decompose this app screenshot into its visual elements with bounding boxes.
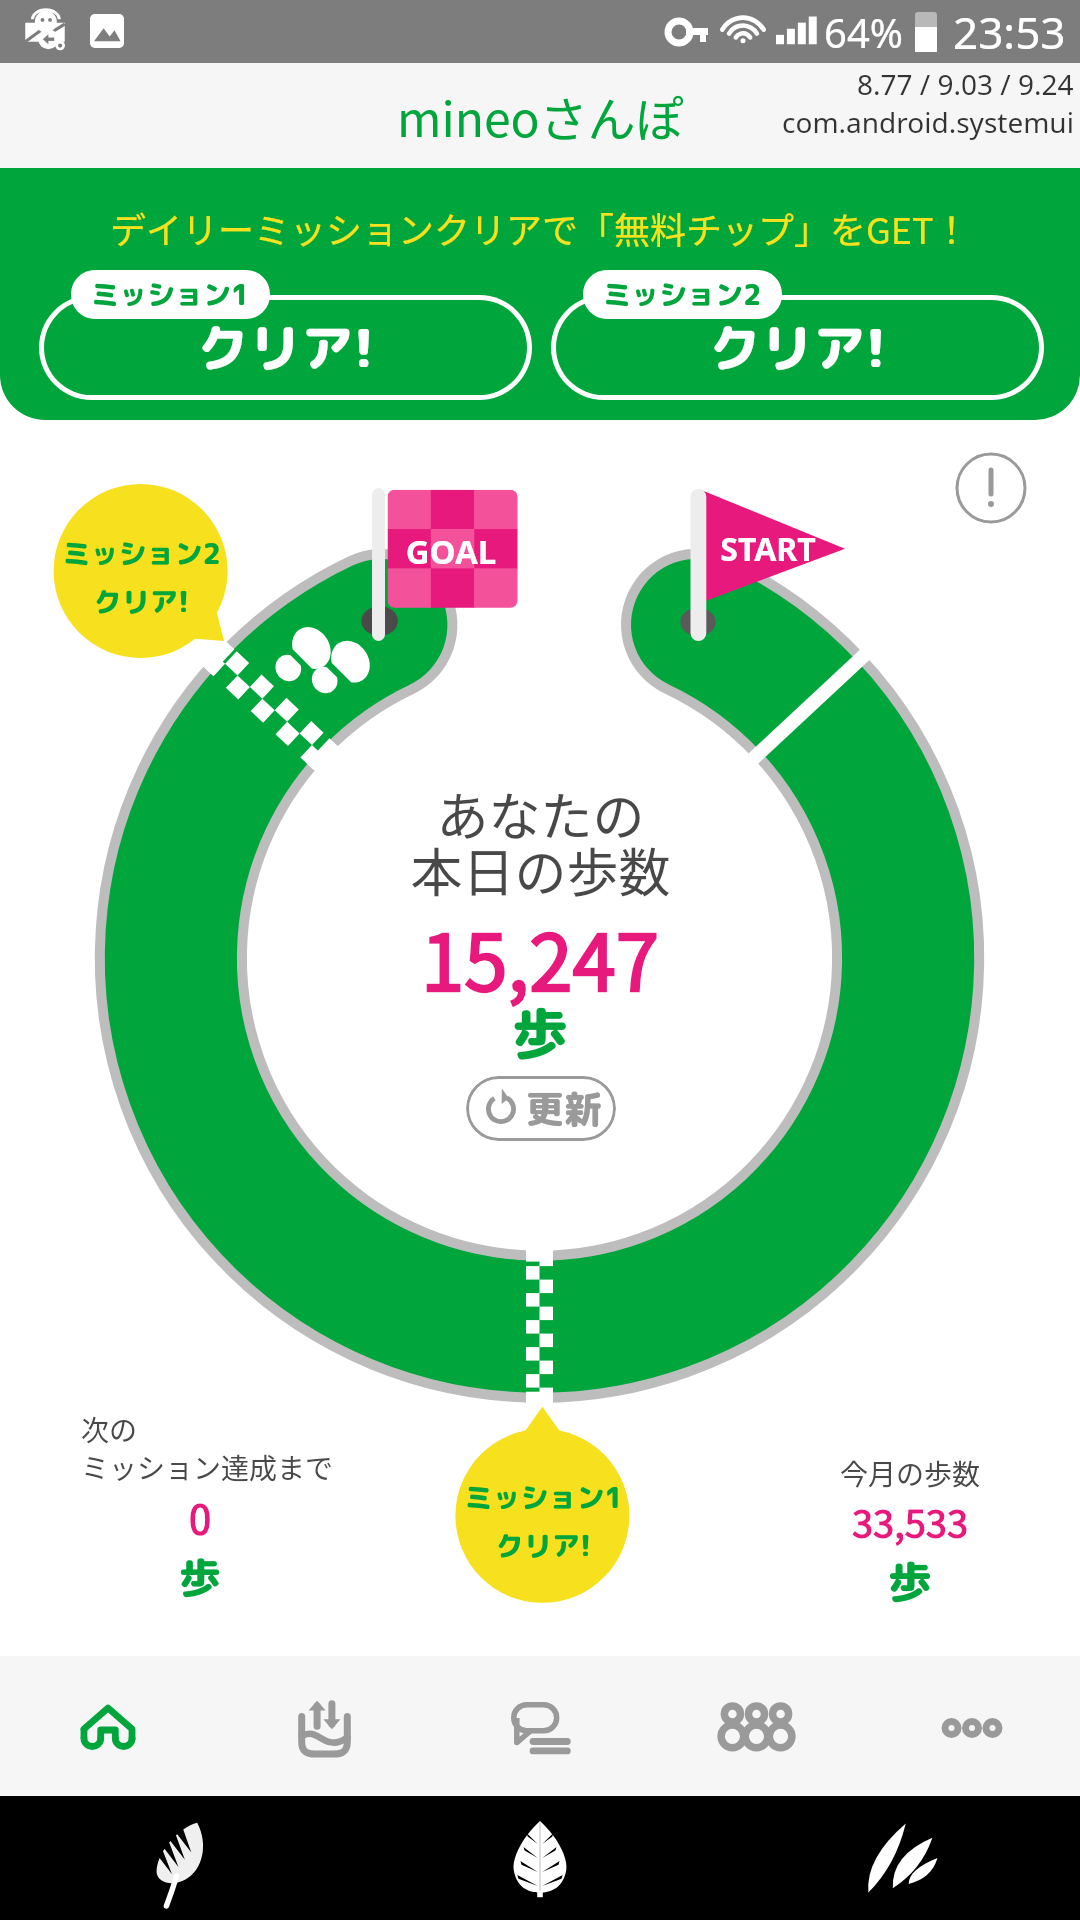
staticText: ミッション1 クリア! [464, 1478, 623, 1565]
button[interactable]: Community [648, 1659, 864, 1796]
staticText: ミッション2 クリア! [62, 534, 221, 621]
button[interactable]: Home [360, 1796, 720, 1920]
button[interactable]: Recents [0, 1796, 360, 1920]
staticText: ミッション1 [91, 275, 250, 314]
button[interactable]: 更新 [466, 1076, 616, 1141]
button[interactable]: Chat [432, 1659, 648, 1796]
staticText: 次の ミッション達成まで [81, 1409, 334, 1488]
staticText: GOAL [391, 529, 511, 574]
staticText: START [708, 527, 828, 571]
button[interactable]: Back [720, 1796, 1080, 1920]
staticText: デイリーミッションクリアで「無料チップ」をGET！ [110, 202, 970, 254]
button[interactable]: クリア! [39, 270, 532, 400]
staticText: 64% [824, 5, 903, 59]
staticText: 0 [81, 1488, 319, 1546]
staticText: クリア! [197, 311, 375, 384]
staticText: 更新 [526, 1082, 603, 1135]
staticText: 8.77 / 9.03 / 9.24 [857, 65, 1074, 103]
staticText: mineoさんぽ [397, 81, 684, 151]
staticText: 歩 [888, 1551, 932, 1612]
button[interactable]: More [864, 1659, 1080, 1796]
staticText: 歩 [0, 994, 1080, 1072]
staticText: 歩 [81, 1548, 319, 1607]
button[interactable]: Steps [216, 1659, 432, 1796]
staticText: 23:53 [953, 2, 1066, 62]
staticText: 15,247 [0, 901, 1080, 1014]
staticText: あなたの 本日の歩数 [410, 776, 671, 907]
staticText: 今月の歩数 [840, 1453, 981, 1494]
button[interactable]: Home [0, 1659, 216, 1796]
button[interactable]: クリア! [551, 270, 1044, 400]
staticText: ミッション2 [603, 275, 762, 314]
staticText: com.android.systemui [782, 103, 1074, 141]
button[interactable]: Info [955, 452, 1027, 524]
staticText: クリア! [709, 311, 887, 384]
staticText: 33,533 [852, 1494, 969, 1549]
